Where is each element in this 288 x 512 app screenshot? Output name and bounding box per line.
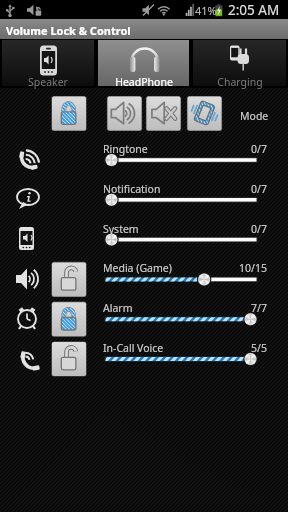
staticText: 0/7 [210, 182, 267, 196]
staticText: Ringtone [103, 142, 148, 156]
staticText: System [103, 222, 139, 236]
staticText: Speaker [0, 75, 96, 89]
staticText: In-Call Voice [103, 341, 164, 355]
button[interactable]: Lock volume [52, 96, 86, 130]
staticText: Alarm [103, 301, 133, 315]
button[interactable]: Volume slider [100, 230, 262, 250]
staticText: 0/7 [210, 222, 267, 236]
button[interactable]: Volume slider [100, 269, 262, 289]
button[interactable]: Volume slider [100, 150, 262, 170]
staticText: Volume Lock & Control [6, 23, 131, 38]
button[interactable]: Vibrate mode [187, 96, 221, 130]
staticText: 10/15 [210, 261, 267, 275]
staticText: Charging [192, 75, 288, 89]
button[interactable] [0, 39, 96, 88]
staticText: 41% [195, 3, 217, 18]
staticText: Mode [240, 109, 269, 123]
staticText: Notification [103, 182, 161, 196]
staticText: 7/7 [210, 301, 267, 315]
button[interactable]: Mute mode [146, 96, 180, 130]
button[interactable]: Volume slider [100, 190, 262, 210]
button[interactable] [191, 39, 288, 88]
button[interactable]: Lock [52, 262, 86, 296]
button[interactable]: Sound mode [107, 96, 141, 130]
staticText: Media (Game) [103, 261, 172, 275]
button[interactable]: Volume slider [100, 349, 262, 369]
button[interactable] [96, 39, 191, 88]
staticText: 0/7 [210, 142, 267, 156]
button[interactable]: Volume slider [100, 309, 262, 329]
staticText: HeadPhone [96, 75, 192, 89]
staticText: 5/5 [210, 341, 267, 355]
button[interactable]: Lock [52, 342, 86, 376]
button[interactable]: Lock [52, 302, 86, 336]
staticText: 2:05 AM [228, 1, 280, 19]
